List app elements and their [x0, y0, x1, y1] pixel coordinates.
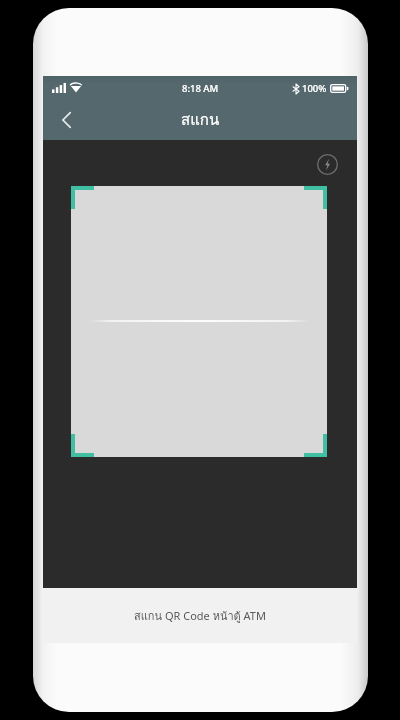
button[interactable]: Back	[43, 100, 89, 140]
staticText: 100%	[302, 82, 327, 95]
button[interactable]: Toggle flash	[315, 152, 339, 176]
staticText: สแกน	[181, 108, 220, 132]
staticText: สแกน QR Code หน้าตู้ ATM	[134, 607, 266, 624]
staticText: 8:18 AM	[182, 82, 219, 95]
